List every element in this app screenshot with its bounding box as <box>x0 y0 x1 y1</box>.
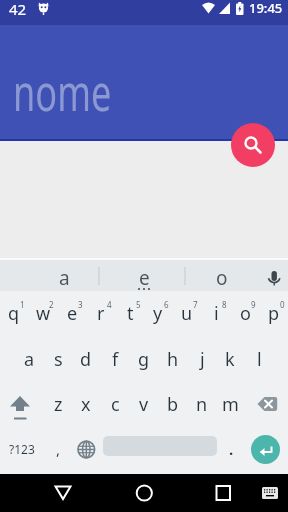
staticText: u <box>181 301 193 326</box>
button[interactable]: ?123 <box>0 426 43 471</box>
button[interactable]: r <box>87 291 115 336</box>
button[interactable]: l <box>245 336 273 382</box>
button[interactable]: o <box>231 291 259 336</box>
staticText: p <box>268 301 280 326</box>
staticText: 1 <box>20 299 25 310</box>
staticText: g <box>138 347 150 372</box>
button[interactable]: d <box>72 336 100 382</box>
staticText: d <box>80 347 92 372</box>
button[interactable]: j <box>188 336 216 382</box>
staticText: 8 <box>222 299 227 310</box>
button[interactable]: i <box>202 291 230 336</box>
staticText: w <box>36 301 51 326</box>
staticText: h <box>167 347 179 372</box>
button[interactable]: e <box>124 265 164 287</box>
button[interactable]: g <box>130 336 158 382</box>
staticText: n <box>196 392 208 417</box>
button[interactable] <box>43 474 83 512</box>
staticText: 0 <box>280 299 285 310</box>
staticText: b <box>167 392 179 417</box>
staticText: 6 <box>164 299 169 310</box>
staticText: 19:45 <box>249 0 283 17</box>
button[interactable]: z <box>44 381 72 427</box>
staticText: z <box>54 392 63 417</box>
staticText: 3 <box>78 299 83 310</box>
button[interactable]: v <box>130 381 158 427</box>
staticText: 7 <box>193 299 198 310</box>
button[interactable]: , <box>44 426 72 471</box>
staticText: , <box>56 439 61 459</box>
button[interactable]: w <box>29 291 57 336</box>
button[interactable] <box>124 474 164 512</box>
button[interactable]: k <box>216 336 244 382</box>
staticText: e <box>67 301 78 326</box>
button[interactable]: a <box>15 336 43 382</box>
staticText: 2 <box>49 299 54 310</box>
staticText: nome <box>13 58 112 126</box>
staticText: f <box>112 347 119 372</box>
button[interactable]: a <box>44 265 84 287</box>
button[interactable]: p <box>260 291 288 336</box>
staticText: s <box>54 347 63 372</box>
button[interactable]: t <box>116 291 144 336</box>
button[interactable]: m <box>216 381 244 427</box>
button[interactable] <box>203 474 243 512</box>
button[interactable]: o <box>202 265 242 287</box>
button[interactable] <box>231 123 275 167</box>
staticText: 42 <box>9 0 27 17</box>
staticText: a <box>59 265 70 287</box>
staticText: x <box>81 392 91 417</box>
staticText: q <box>8 301 20 326</box>
button[interactable]: f <box>101 336 129 382</box>
button[interactable]: q <box>0 291 28 336</box>
staticText: y <box>153 301 163 326</box>
staticText: o <box>216 265 228 287</box>
staticText: m <box>222 392 239 417</box>
button[interactable] <box>72 426 100 471</box>
staticText: t <box>127 301 134 326</box>
staticText: 5 <box>136 299 141 310</box>
staticText: v <box>139 392 149 417</box>
staticText: a <box>24 347 35 372</box>
button[interactable] <box>251 435 280 464</box>
button[interactable]: x <box>72 381 100 427</box>
staticText: . <box>229 439 234 459</box>
button[interactable]: u <box>173 291 201 336</box>
staticText: r <box>97 301 105 326</box>
staticText: k <box>225 347 235 372</box>
button[interactable]: h <box>159 336 187 382</box>
button[interactable] <box>245 382 288 428</box>
button[interactable]: b <box>159 381 187 427</box>
button[interactable]: . <box>217 426 245 471</box>
button[interactable]: n <box>188 381 216 427</box>
staticText: o <box>240 301 251 326</box>
button[interactable]: y <box>144 291 172 336</box>
staticText: c <box>111 392 120 417</box>
staticText: e <box>139 265 150 287</box>
button[interactable]: e <box>58 291 86 336</box>
button[interactable] <box>0 382 43 428</box>
staticText: j <box>200 347 205 372</box>
staticText: 9 <box>251 299 256 310</box>
staticText: l <box>257 347 262 372</box>
staticText: 4 <box>107 299 112 310</box>
button[interactable] <box>255 479 285 507</box>
button[interactable]: s <box>44 336 72 382</box>
staticText: i <box>214 301 219 326</box>
staticText: ?123 <box>9 441 35 457</box>
button[interactable]: c <box>101 381 129 427</box>
